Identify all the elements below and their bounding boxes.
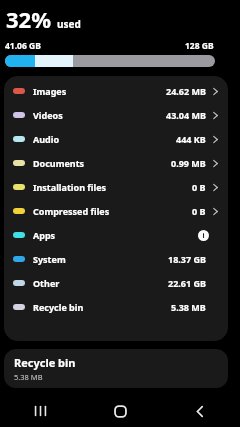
staticText: Installation files [33, 181, 107, 193]
staticText: Recycle bin [14, 355, 76, 370]
button[interactable]: System [4, 247, 228, 271]
staticText: 0 B [192, 205, 206, 217]
staticText: Other [33, 277, 60, 289]
staticText: Recycle bin [33, 301, 84, 313]
button[interactable]: Back [160, 395, 240, 427]
staticText: 22.61 GB [168, 277, 206, 289]
button[interactable]: Audio [4, 127, 228, 151]
staticText: System [33, 253, 66, 265]
staticText: i [202, 231, 205, 241]
button[interactable]: Recent apps [0, 395, 80, 427]
staticText: Compressed files [33, 205, 110, 217]
staticText: Videos [33, 109, 63, 121]
button[interactable]: Images [4, 79, 228, 103]
button[interactable]: Recycle bin [4, 295, 228, 319]
staticText: 32% [6, 4, 52, 34]
button[interactable]: Recycle bin [4, 349, 228, 388]
staticText: 24.62 MB [166, 85, 206, 97]
staticText: 444 KB [176, 133, 206, 145]
other: App info [198, 230, 209, 241]
staticText: 0.99 MB [171, 157, 206, 169]
staticText: used [57, 17, 81, 31]
button[interactable]: Apps [4, 223, 228, 247]
staticText: 43.04 MB [166, 109, 206, 121]
staticText: Documents [33, 157, 85, 169]
button[interactable]: Documents [4, 151, 228, 175]
button[interactable]: Other [4, 271, 228, 295]
button[interactable]: Installation files [4, 175, 228, 199]
button[interactable]: Home [80, 395, 160, 427]
staticText: 18.37 GB [168, 253, 206, 265]
button[interactable]: Compressed files [4, 199, 228, 223]
staticText: Images [33, 85, 67, 97]
button[interactable]: Videos [4, 103, 228, 127]
staticText: Audio [33, 133, 60, 145]
staticText: 128 GB [185, 40, 214, 52]
staticText: 0 B [192, 181, 206, 193]
staticText: Apps [33, 229, 56, 241]
staticText: 5.38 MB [14, 372, 43, 382]
staticText: 41.06 GB [5, 40, 41, 52]
staticText: 5.38 MB [171, 301, 206, 313]
